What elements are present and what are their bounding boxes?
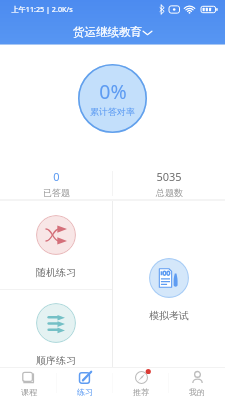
- button[interactable]: 0: [0, 167, 112, 199]
- staticText: 0: [53, 169, 60, 184]
- button[interactable]: 5035: [113, 167, 225, 199]
- staticText: 5035: [156, 169, 182, 184]
- staticText: 0%: [99, 78, 127, 105]
- staticText: 课程: [21, 387, 37, 397]
- staticText: 总题数: [156, 187, 183, 198]
- staticText: 货运继续教育: [73, 25, 142, 39]
- staticText: 累计答对率: [90, 106, 135, 117]
- staticText: 顺序练习: [36, 354, 76, 367]
- button[interactable]: 我的: [169, 368, 225, 400]
- button[interactable]: 推荐: [113, 368, 169, 400]
- staticText: 我的: [189, 387, 205, 397]
- staticText: 练习: [77, 387, 93, 397]
- button[interactable]: 模拟考试: [113, 201, 225, 368]
- staticText: 随机练习: [36, 266, 76, 279]
- staticText: 模拟考试: [149, 309, 189, 322]
- button[interactable]: 练习: [57, 368, 113, 400]
- staticText: 上午11:25 | 2.0K/s: [11, 4, 73, 14]
- button[interactable]: 随机练习: [0, 201, 112, 289]
- button[interactable]: 顺序练习: [0, 290, 112, 368]
- staticText: 已答题: [43, 187, 70, 198]
- button[interactable]: 课程: [0, 368, 57, 400]
- staticText: 推荐: [133, 387, 149, 397]
